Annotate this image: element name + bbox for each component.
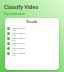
staticText: Classify Video	[4, 4, 39, 11]
staticText: Item name	[12, 26, 25, 29]
staticText: 0.98	[12, 34, 16, 36]
staticText: 0.97	[12, 39, 16, 41]
staticText: 0.99	[12, 29, 16, 31]
staticText: Item name	[12, 36, 25, 39]
staticText: Item name	[12, 46, 25, 49]
button[interactable]: Item name	[5, 31, 59, 36]
staticText: 0.95	[12, 49, 16, 51]
staticText: Item name	[12, 31, 25, 34]
staticText: Results	[5, 20, 59, 24]
staticText: Item name	[12, 41, 25, 44]
button[interactable]: Item name	[5, 51, 59, 56]
staticText: 0.96	[12, 44, 16, 46]
staticText: Top predictions	[4, 12, 26, 16]
staticText: 0.94	[12, 54, 16, 56]
button[interactable]: Item name	[5, 41, 59, 46]
button[interactable]: Item name	[5, 36, 59, 41]
button[interactable]: Item name	[5, 26, 59, 31]
staticText: Item name	[12, 51, 25, 54]
button[interactable]: Item name	[5, 46, 59, 51]
